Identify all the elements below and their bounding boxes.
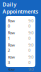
staticText: Row 4 <box>8 66 15 72</box>
staticText: 9:00 <box>28 18 33 29</box>
staticText: 9:00 <box>28 42 33 53</box>
staticText: Row 3 <box>8 54 15 65</box>
staticText: Row 2 <box>8 42 15 53</box>
staticText: Row 1 <box>8 30 15 41</box>
staticText: Daily Appointments <box>2 1 38 15</box>
staticText: Row 0 <box>8 18 15 29</box>
staticText: 9:00 <box>28 30 33 41</box>
staticText: 9:00 <box>28 54 33 65</box>
staticText: 9:00 <box>28 66 33 72</box>
